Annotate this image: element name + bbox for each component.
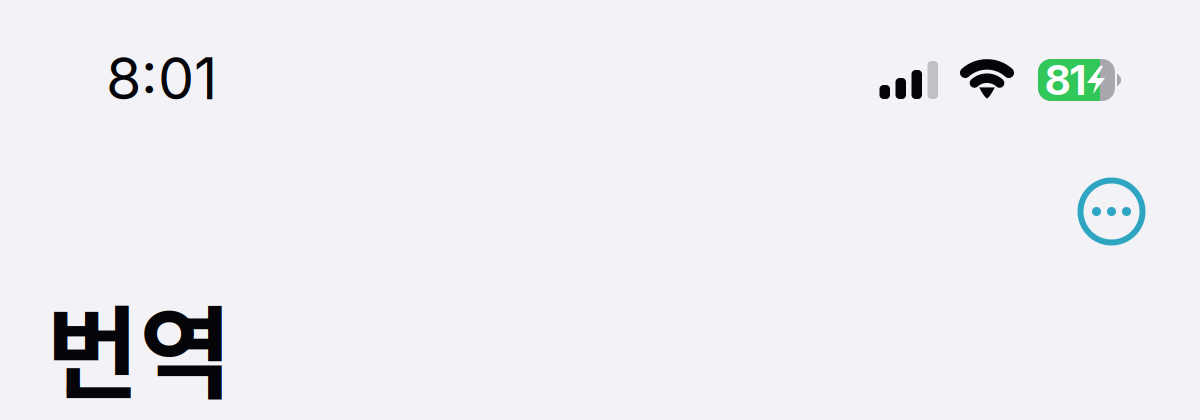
button[interactable]: More options (1076, 176, 1147, 247)
staticText: 번역 (46, 273, 232, 420)
staticText: 81 (1045, 55, 1086, 105)
staticText: 8:01 (106, 44, 217, 113)
